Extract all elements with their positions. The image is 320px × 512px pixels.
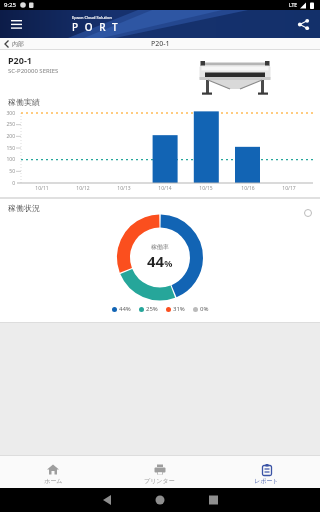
button[interactable]: プリンター (106, 456, 213, 488)
staticText: Epson Cloud Solution (72, 15, 112, 20)
staticText: SC-P20000 SERIES (8, 67, 59, 75)
button[interactable] (8, 16, 24, 32)
staticText: 10/16 (236, 185, 260, 192)
staticText: 稼働実績 (8, 97, 40, 107)
staticText: LTE (289, 2, 298, 9)
staticText: 10/13 (112, 185, 136, 192)
button[interactable]: 内部 (4, 40, 24, 48)
staticText: 50 (0, 168, 15, 175)
staticText: 44% (147, 251, 173, 271)
staticText: 31% (173, 305, 185, 313)
staticText: プリンター (144, 477, 175, 485)
staticText: 内部 (12, 40, 24, 48)
staticText: 150 (0, 145, 15, 152)
staticText: ホーム (44, 477, 63, 485)
staticText: 100 (0, 156, 15, 163)
button[interactable] (0, 488, 106, 512)
staticText: 10/17 (277, 185, 301, 192)
staticText: 300 (0, 110, 15, 117)
staticText: 10/15 (194, 185, 218, 192)
staticText: 9:25 (4, 1, 16, 9)
staticText: 10/11 (30, 185, 54, 192)
button[interactable] (106, 488, 213, 512)
staticText: 250 (0, 121, 15, 128)
staticText: P O R T (72, 20, 120, 34)
staticText: 44% (119, 305, 131, 313)
button[interactable] (296, 17, 310, 31)
staticText: P20-1 (151, 39, 170, 49)
staticText: 0% (200, 305, 209, 313)
staticText: P20-1 (8, 54, 32, 66)
button[interactable]: レポート (213, 456, 320, 488)
staticText: 10/14 (153, 185, 177, 192)
staticText: 稼働率 (151, 243, 169, 251)
button[interactable]: ホーム (0, 456, 106, 488)
staticText: 0 (0, 180, 15, 187)
button[interactable] (213, 488, 320, 512)
staticText: 稼働状況 (8, 203, 40, 213)
staticText: 10/12 (71, 185, 95, 192)
staticText: レポート (254, 477, 279, 485)
staticText: 25% (146, 305, 158, 313)
staticText: 200 (0, 133, 15, 140)
